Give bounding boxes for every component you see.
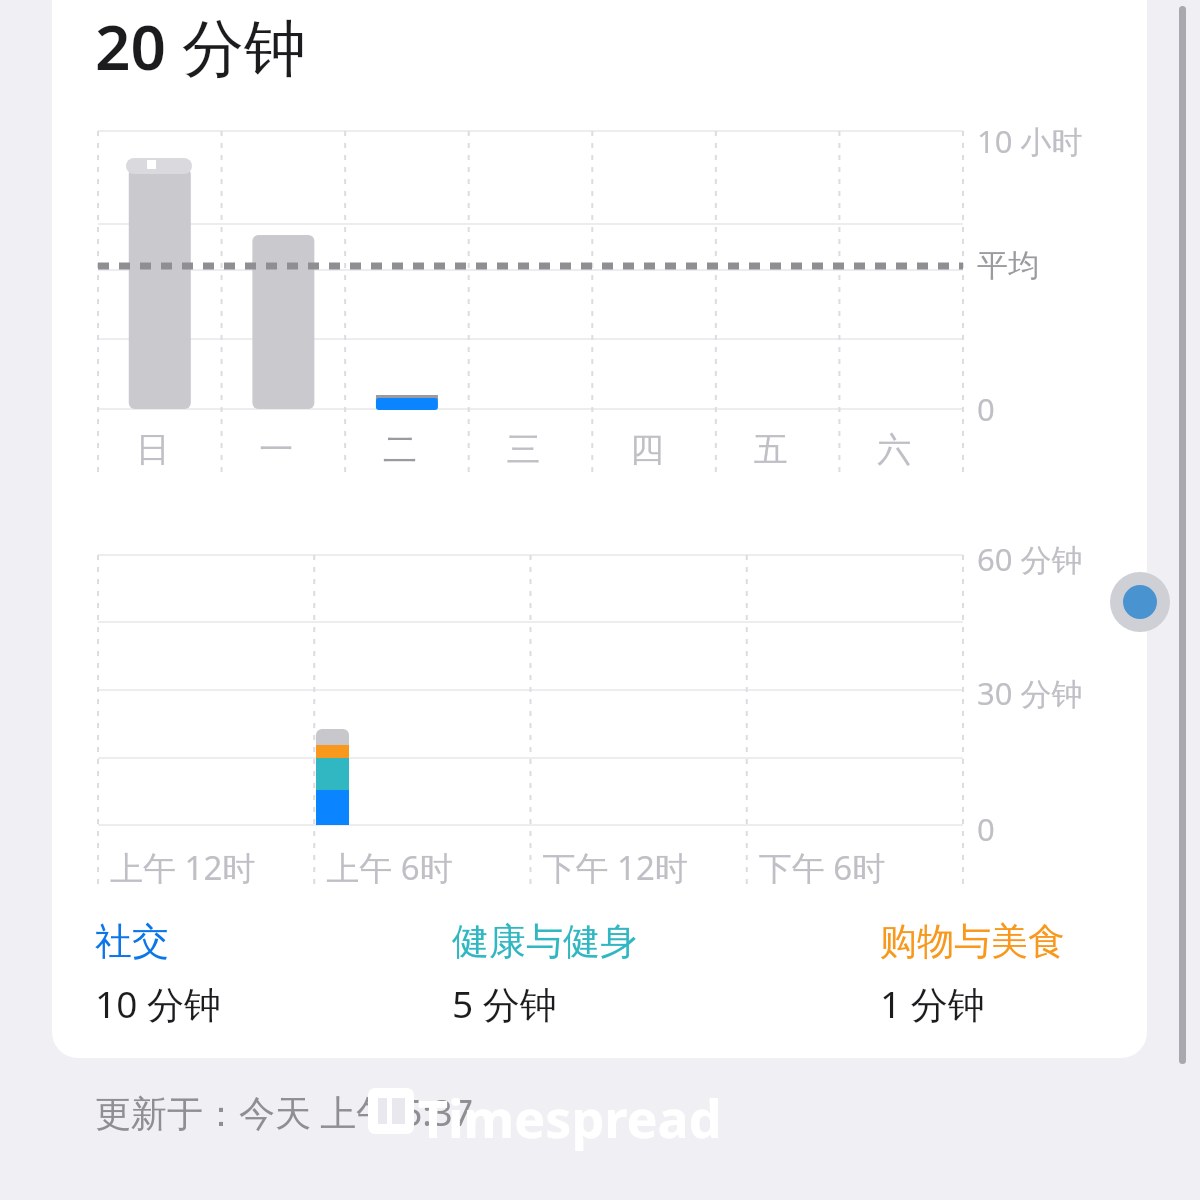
button[interactable]: [52, 0, 1147, 1058]
button[interactable]: AssistiveTouch: [1110, 572, 1170, 632]
